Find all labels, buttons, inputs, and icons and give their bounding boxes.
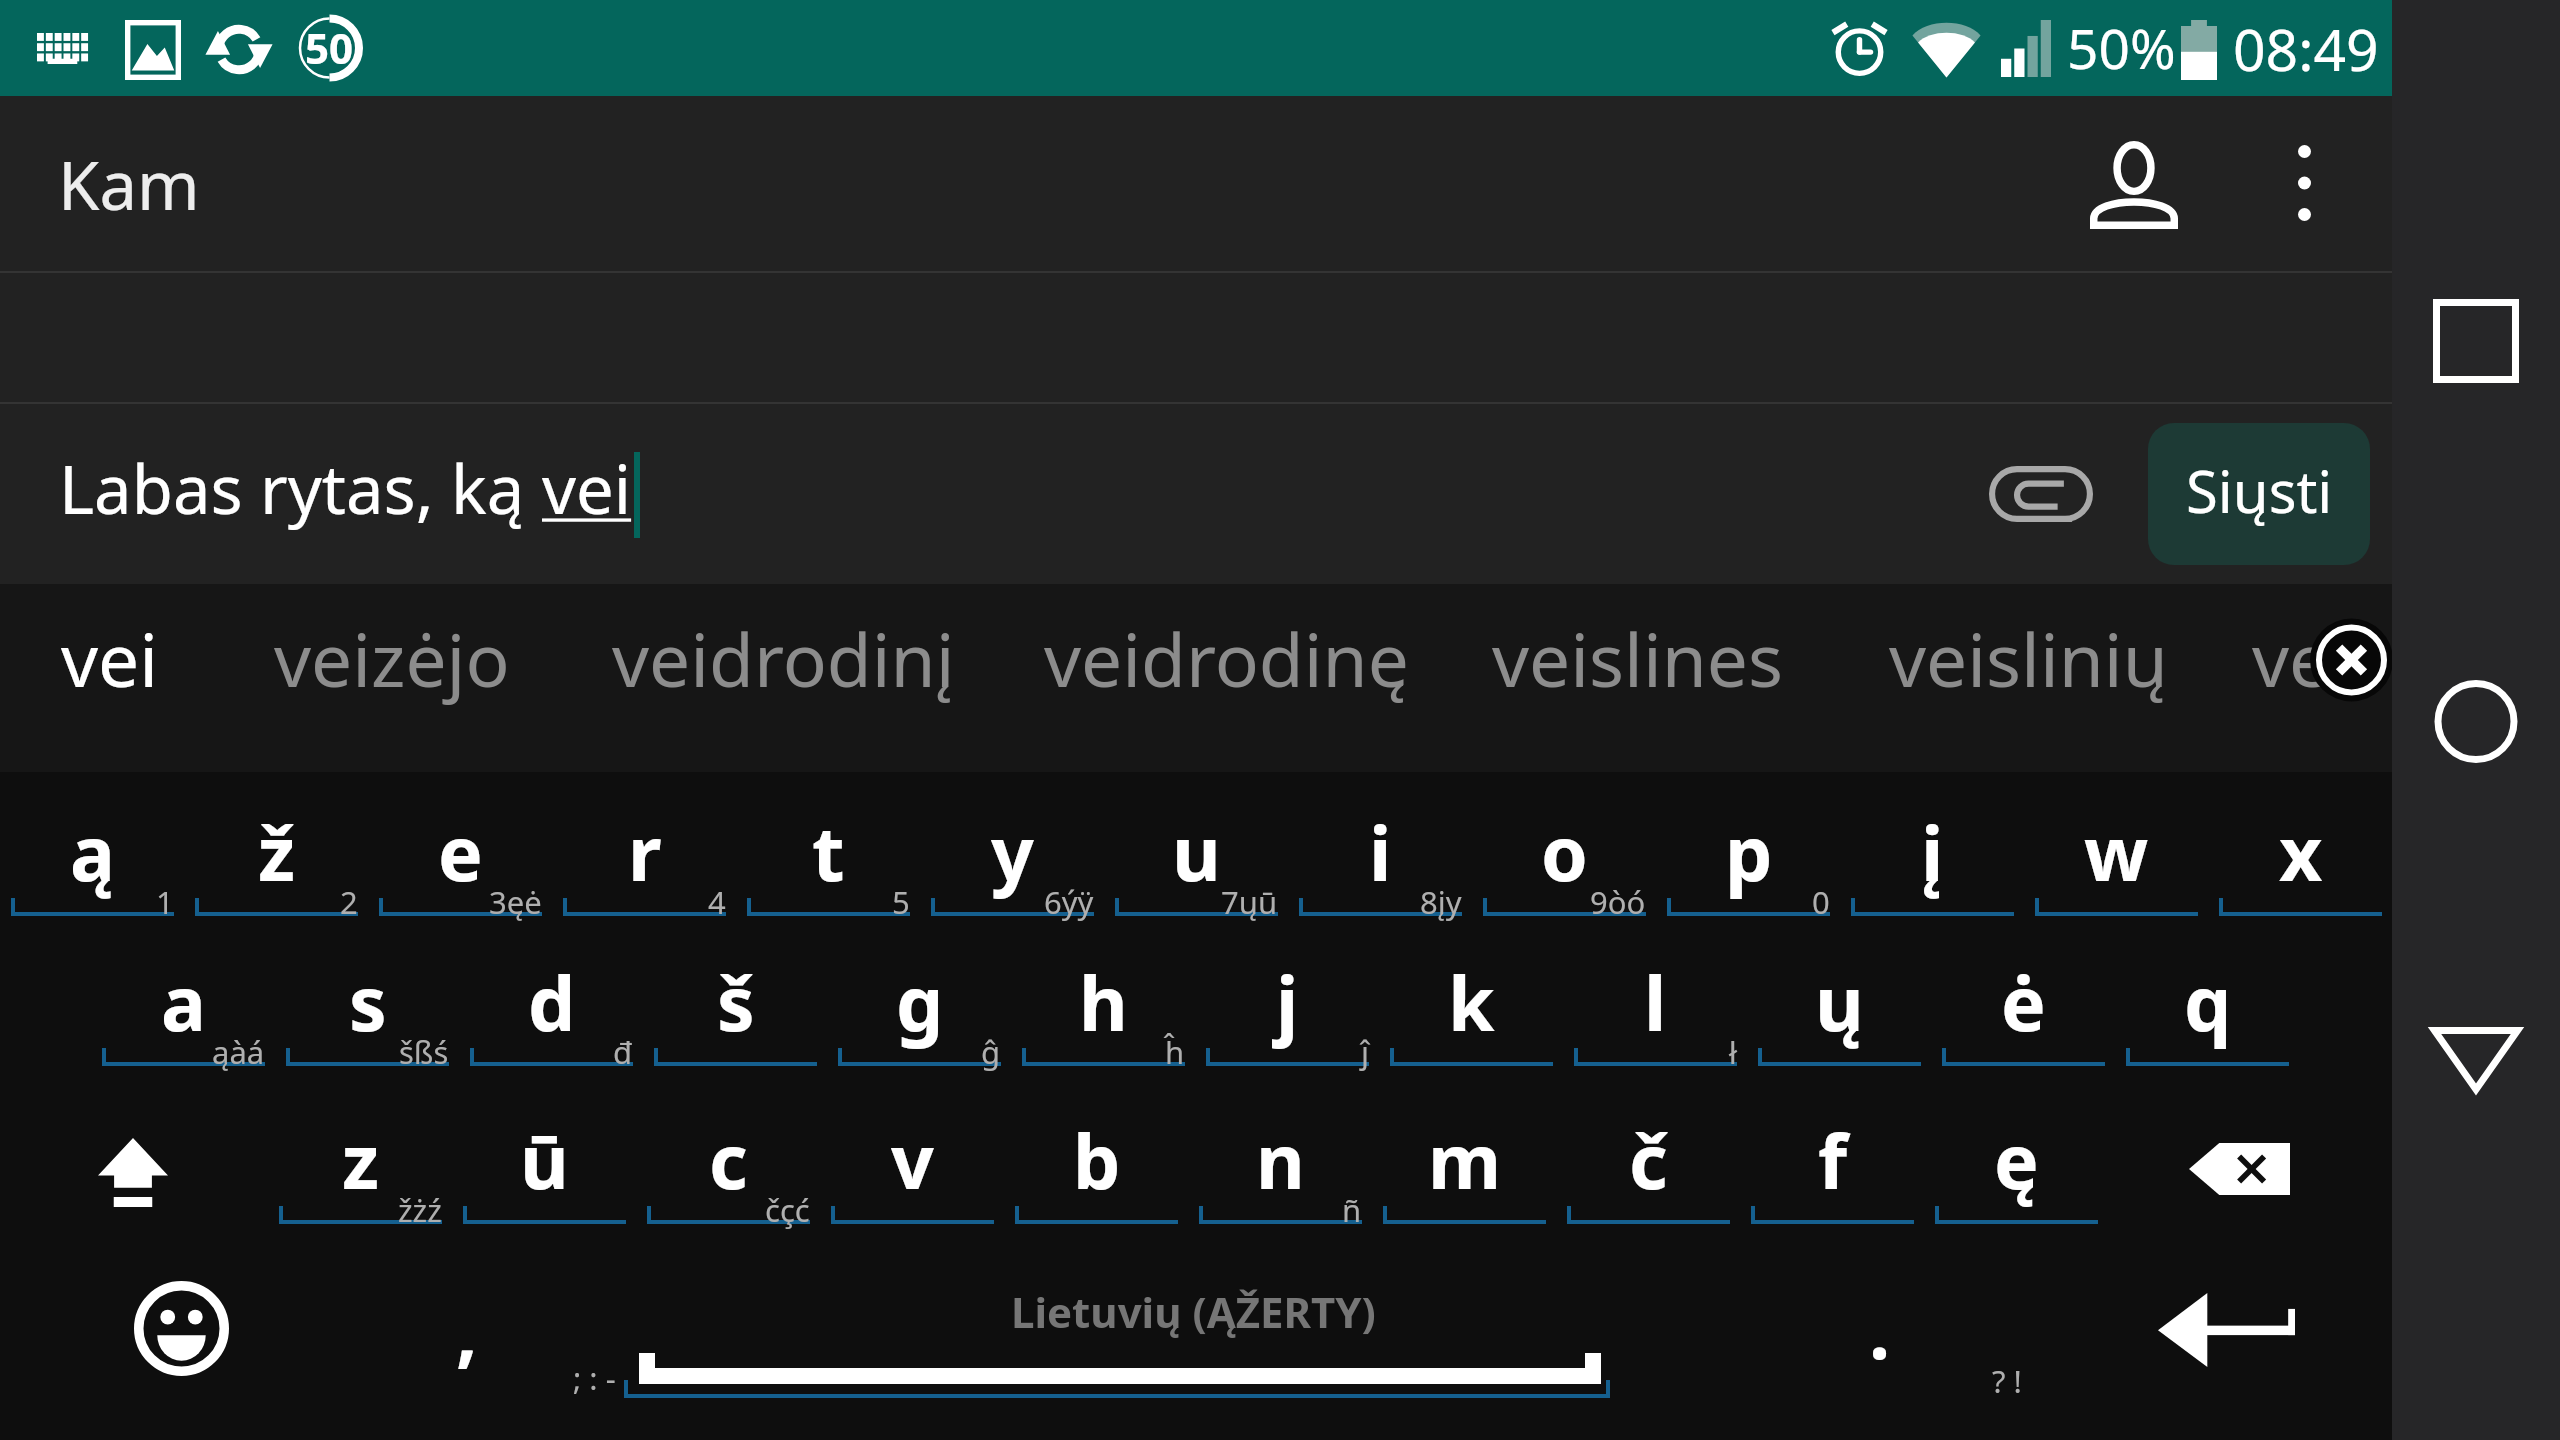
- button[interactable]: Clear suggestions: [2316, 624, 2387, 696]
- button[interactable]: d: [470, 922, 654, 1072]
- staticText: c: [709, 1109, 748, 1211]
- button[interactable]: ž: [195, 772, 379, 922]
- staticText: u: [1172, 801, 1221, 903]
- staticText: r: [628, 801, 662, 903]
- button[interactable]: x: [2219, 772, 2392, 922]
- button[interactable]: n: [1199, 1072, 1383, 1230]
- button[interactable]: Recent apps: [2392, 276, 2560, 406]
- staticText: 08:49: [2233, 10, 2379, 88]
- staticText: 4: [708, 881, 726, 923]
- button[interactable]: h: [1022, 922, 1206, 1072]
- button[interactable]: j: [1206, 922, 1390, 1072]
- button[interactable]: veislinių: [1889, 609, 2168, 708]
- staticText: ,: [456, 1279, 478, 1381]
- button[interactable]: b: [1015, 1072, 1199, 1230]
- button[interactable]: a: [102, 922, 286, 1072]
- button[interactable]: m: [1383, 1072, 1567, 1230]
- button[interactable]: More options: [2237, 96, 2372, 271]
- button[interactable]: į: [1851, 772, 2035, 922]
- button[interactable]: Back: [2392, 995, 2560, 1125]
- staticText: 1: [156, 881, 174, 923]
- staticText: x: [2279, 801, 2323, 903]
- staticText: p: [1725, 801, 1773, 903]
- staticText: ĵ: [1361, 1031, 1369, 1073]
- staticText: o: [1541, 801, 1588, 903]
- staticText: 8įy: [1420, 881, 1462, 923]
- staticText: .: [1869, 1279, 1891, 1381]
- staticText: č: [1629, 1109, 1668, 1211]
- staticText: f: [1818, 1109, 1848, 1211]
- button[interactable]: veislines: [1492, 609, 1783, 708]
- staticText: g: [896, 951, 944, 1053]
- button[interactable]: i: [1299, 772, 1483, 922]
- button[interactable]: o: [1483, 772, 1667, 922]
- button[interactable]: r: [563, 772, 747, 922]
- staticText: Lietuvių (ĄŽERTY): [1011, 1283, 1376, 1340]
- staticText: 7ųū: [1221, 881, 1278, 923]
- staticText: m: [1428, 1109, 1502, 1211]
- button[interactable]: q: [2126, 922, 2310, 1072]
- button[interactable]: g: [838, 922, 1022, 1072]
- button[interactable]: Home: [2392, 656, 2560, 786]
- button[interactable]: č: [1567, 1072, 1751, 1230]
- button[interactable]: ę: [1935, 1072, 2119, 1230]
- staticText: n: [1256, 1109, 1305, 1211]
- staticText: ĥ: [1165, 1031, 1185, 1073]
- button[interactable]: p: [1667, 772, 1851, 922]
- button[interactable]: Shift: [0, 1072, 279, 1230]
- button[interactable]: veizėjo: [274, 609, 510, 708]
- button[interactable]: Siųsti: [2148, 423, 2370, 565]
- staticText: žżź: [398, 1189, 442, 1231]
- staticText: š: [717, 951, 755, 1053]
- button[interactable]: Space: [624, 1230, 1610, 1440]
- staticText: e: [438, 801, 483, 903]
- staticText: ĝ: [981, 1031, 1001, 1073]
- button[interactable]: ų: [1758, 922, 1942, 1072]
- button[interactable]: vei: [61, 609, 159, 708]
- button[interactable]: e: [379, 772, 563, 922]
- button[interactable]: k: [1390, 922, 1574, 1072]
- button[interactable]: veidrodinį: [612, 609, 955, 708]
- button[interactable]: Emoji: [0, 1230, 279, 1440]
- staticText: k: [1448, 951, 1495, 1053]
- staticText: ł: [1729, 1031, 1737, 1073]
- button[interactable]: ,: [279, 1230, 624, 1440]
- staticText: ž: [258, 801, 295, 903]
- button[interactable]: c: [647, 1072, 831, 1230]
- button[interactable]: f: [1751, 1072, 1935, 1230]
- staticText: ? !: [1992, 1360, 2022, 1402]
- staticText: h: [1079, 951, 1128, 1053]
- button[interactable]: ū: [463, 1072, 647, 1230]
- button[interactable]: .: [1610, 1230, 2010, 1440]
- staticText: ą: [70, 801, 115, 903]
- button[interactable]: u: [1115, 772, 1299, 922]
- staticText: 9òó: [1590, 881, 1646, 923]
- button[interactable]: ė: [1942, 922, 2126, 1072]
- button[interactable]: t: [747, 772, 931, 922]
- button[interactable]: y: [931, 772, 1115, 922]
- staticText: veislines: [1492, 609, 1783, 708]
- button[interactable]: Contacts: [2044, 96, 2224, 271]
- staticText: Kam: [58, 138, 200, 229]
- button[interactable]: v: [831, 1072, 1015, 1230]
- button[interactable]: s: [286, 922, 470, 1072]
- button[interactable]: Attach: [1966, 419, 2116, 569]
- button[interactable]: w: [2035, 772, 2219, 922]
- staticText: 50: [305, 19, 354, 76]
- button[interactable]: l: [1574, 922, 1758, 1072]
- button[interactable]: Enter: [1955, 1230, 2392, 1440]
- staticText: Labas rytas, ką: [59, 442, 542, 533]
- staticText: veidrodinę: [1044, 609, 1409, 708]
- button[interactable]: ve: [2252, 609, 2331, 708]
- staticText: čçć: [765, 1189, 810, 1231]
- button[interactable]: ą: [11, 772, 195, 922]
- button[interactable]: veidrodinę: [1044, 609, 1409, 708]
- staticText: w: [2084, 801, 2149, 903]
- staticText: 50%: [2067, 10, 2176, 85]
- button[interactable]: š: [654, 922, 838, 1072]
- button[interactable]: z: [279, 1072, 463, 1230]
- staticText: d: [528, 951, 576, 1053]
- staticText: ū: [520, 1109, 569, 1211]
- button[interactable]: Backspace: [2119, 1072, 2392, 1230]
- staticText: Siųsti: [2186, 451, 2333, 530]
